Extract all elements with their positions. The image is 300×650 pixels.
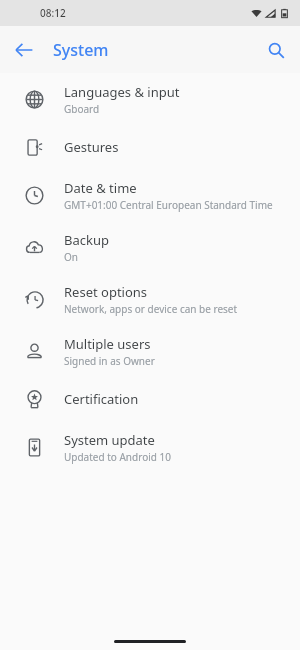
button[interactable]: Certification	[0, 377, 300, 421]
button[interactable]: Gestures	[0, 125, 300, 169]
staticText: GMT+01:00 Central European Standard Time	[64, 198, 273, 212]
staticText: System	[53, 39, 109, 61]
staticText: Date & time	[64, 179, 137, 197]
staticText: Backup	[64, 231, 109, 249]
staticText: Gboard	[64, 102, 100, 116]
button[interactable]: System update	[0, 421, 300, 473]
button[interactable]: Search	[258, 32, 294, 68]
staticText: Multiple users	[64, 335, 151, 353]
staticText: Languages & input	[64, 83, 180, 101]
staticText: Certification	[64, 390, 139, 408]
staticText: Updated to Android 10	[64, 450, 171, 464]
staticText: 08:12	[40, 6, 66, 20]
staticText: Gestures	[64, 138, 119, 156]
button[interactable]: Back	[6, 32, 42, 68]
staticText: System update	[64, 431, 155, 449]
button[interactable]: Backup	[0, 221, 300, 273]
staticText: Reset options	[64, 283, 148, 301]
button[interactable]: Languages & input	[0, 73, 300, 125]
button[interactable]: Multiple users	[0, 325, 300, 377]
button[interactable]: Date & time	[0, 169, 300, 221]
staticText: Signed in as Owner	[64, 354, 155, 368]
staticText: Network, apps or device can be reset	[64, 302, 238, 316]
button[interactable]: Reset options	[0, 273, 300, 325]
staticText: On	[64, 250, 78, 264]
